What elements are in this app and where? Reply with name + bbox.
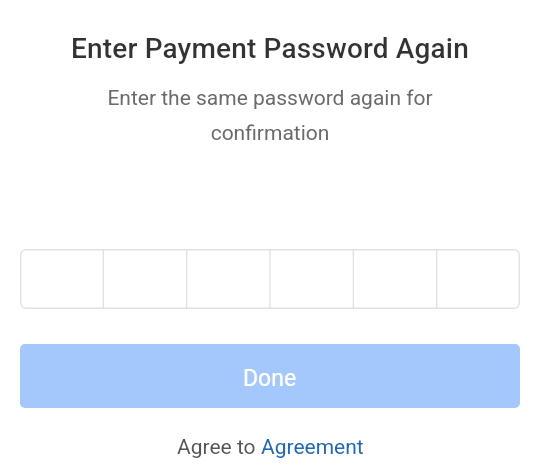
button[interactable]: Password digit 1: [20, 249, 103, 309]
staticText: Enter the same password again for confir…: [90, 86, 450, 145]
button[interactable]: Password digit 6: [435, 249, 518, 309]
button[interactable]: Password digit 5: [352, 249, 435, 309]
staticText: Agreement: [261, 435, 364, 460]
button[interactable]: Password digit 2: [103, 249, 186, 309]
button[interactable]: Done: [20, 344, 520, 408]
staticText: Agree to: [177, 435, 261, 460]
staticText: Enter Payment Password Again: [71, 32, 469, 65]
button[interactable]: Password digit 3: [186, 249, 269, 309]
staticText: Done: [243, 365, 297, 392]
button[interactable]: Password digit 4: [269, 249, 352, 309]
button[interactable]: Agreement: [261, 435, 364, 460]
